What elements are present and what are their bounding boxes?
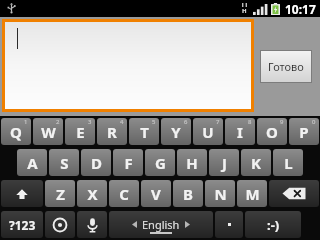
button[interactable]: Backspace [269,180,319,207]
button[interactable]: Shift [1,180,43,207]
staticText: P [299,122,309,142]
staticText: S [60,153,69,173]
staticText: T [140,122,149,142]
staticText: Готово [268,59,304,74]
staticText: 8 [248,118,252,126]
button[interactable]: H [177,149,207,176]
button[interactable]: Готово [261,51,311,82]
staticText: 10:17 [285,1,316,17]
staticText: E [76,122,85,142]
staticText: V [151,184,161,204]
button[interactable]: Voice input [77,211,107,238]
button[interactable]: C [109,180,139,207]
staticText: Y [171,122,181,142]
staticText: I [237,122,243,142]
button[interactable]: J [209,149,239,176]
button[interactable]: Y [161,118,191,145]
staticText: Z [56,184,65,204]
staticText: N [214,184,227,204]
staticText: W [41,122,56,142]
button[interactable]: Settings [45,211,75,238]
staticText: A [27,153,38,173]
staticText: :-) [267,216,280,234]
staticText: English [142,217,180,232]
button[interactable]: L [273,149,303,176]
button[interactable]: K [241,149,271,176]
staticText: H [186,153,198,173]
button[interactable]: A [17,149,47,176]
button[interactable] [5,22,251,109]
staticText: X [87,184,98,204]
button[interactable]: E [65,118,95,145]
button[interactable]: F [113,149,143,176]
button[interactable]: X [77,180,107,207]
button[interactable]: R [97,118,127,145]
staticText: 2 [56,118,60,126]
button[interactable]: G [145,149,175,176]
button[interactable]: I [225,118,255,145]
staticText: B [183,184,193,204]
staticText: F [124,153,133,173]
staticText: O [266,122,278,142]
staticText: K [251,153,261,173]
button[interactable]: U [193,118,223,145]
staticText: G [155,153,166,173]
button[interactable]: Q [1,118,31,145]
staticText: M [245,184,260,204]
staticText: L [284,153,293,173]
button[interactable]: :-) [245,211,301,238]
staticText: 3 [88,118,92,126]
button[interactable]: P [289,118,319,145]
button[interactable]: D [81,149,111,176]
staticText: 0 [312,118,316,126]
button[interactable]: O [257,118,287,145]
button[interactable]: M [237,180,267,207]
staticText: Q [10,122,22,142]
button[interactable]: ?123 [1,211,43,238]
button[interactable]: Space English [109,211,213,238]
staticText: 6 [184,118,188,126]
staticText: R [107,122,117,142]
button[interactable]: Period [215,211,243,238]
button[interactable]: Z [45,180,75,207]
button[interactable]: B [173,180,203,207]
button[interactable]: N [205,180,235,207]
staticText: 7 [216,118,220,126]
staticText: 5 [152,118,156,126]
staticText: ?123 [9,217,36,233]
staticText: U [202,122,214,142]
staticText: C [119,184,129,204]
button[interactable]: S [49,149,79,176]
button[interactable]: V [141,180,171,207]
staticText: D [91,153,102,173]
staticText: 4 [120,118,124,126]
staticText: 9 [280,118,284,126]
staticText: J [222,153,227,173]
staticText: 1 [24,118,28,126]
button[interactable]: T [129,118,159,145]
staticText: H [242,7,247,15]
button[interactable]: W [33,118,63,145]
